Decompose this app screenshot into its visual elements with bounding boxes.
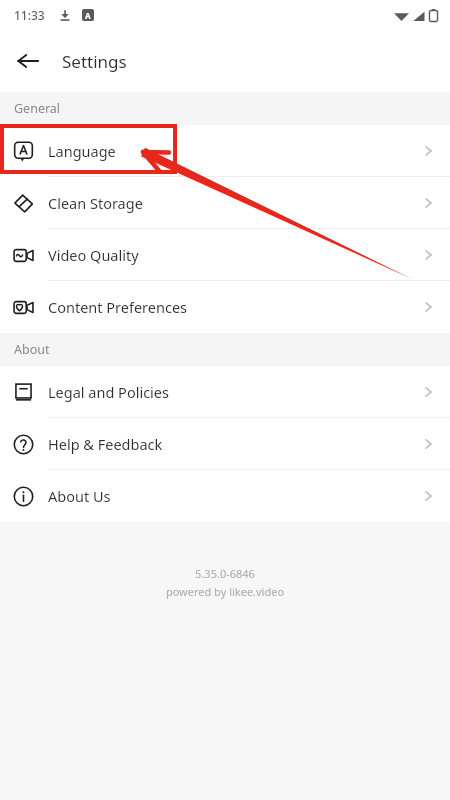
button[interactable]: Clean Storage <box>0 177 450 229</box>
staticText: About Us <box>48 486 111 506</box>
button[interactable]: Video Quality <box>0 229 450 281</box>
staticText: A <box>85 10 91 21</box>
staticText: 11:33 <box>14 7 45 23</box>
staticText: About <box>14 341 50 358</box>
staticText: Content Preferences <box>48 297 188 317</box>
button[interactable]: Content Preferences <box>0 281 450 333</box>
button[interactable]: Legal and Policies <box>0 366 450 418</box>
staticText: 5.35.0-6846 <box>0 566 450 581</box>
staticText: Settings <box>62 50 127 73</box>
button[interactable]: Back <box>8 41 48 81</box>
staticText: Language <box>48 141 116 161</box>
button[interactable]: Language <box>0 125 450 177</box>
staticText: General <box>14 100 61 117</box>
staticText: Legal and Policies <box>48 382 169 402</box>
button[interactable]: About Us <box>0 470 450 522</box>
button[interactable]: Help & Feedback <box>0 418 450 470</box>
staticText: powered by likee.video <box>0 584 450 599</box>
staticText: Clean Storage <box>48 193 143 213</box>
staticText: Video Quality <box>48 245 139 265</box>
staticText: Help & Feedback <box>48 434 163 454</box>
